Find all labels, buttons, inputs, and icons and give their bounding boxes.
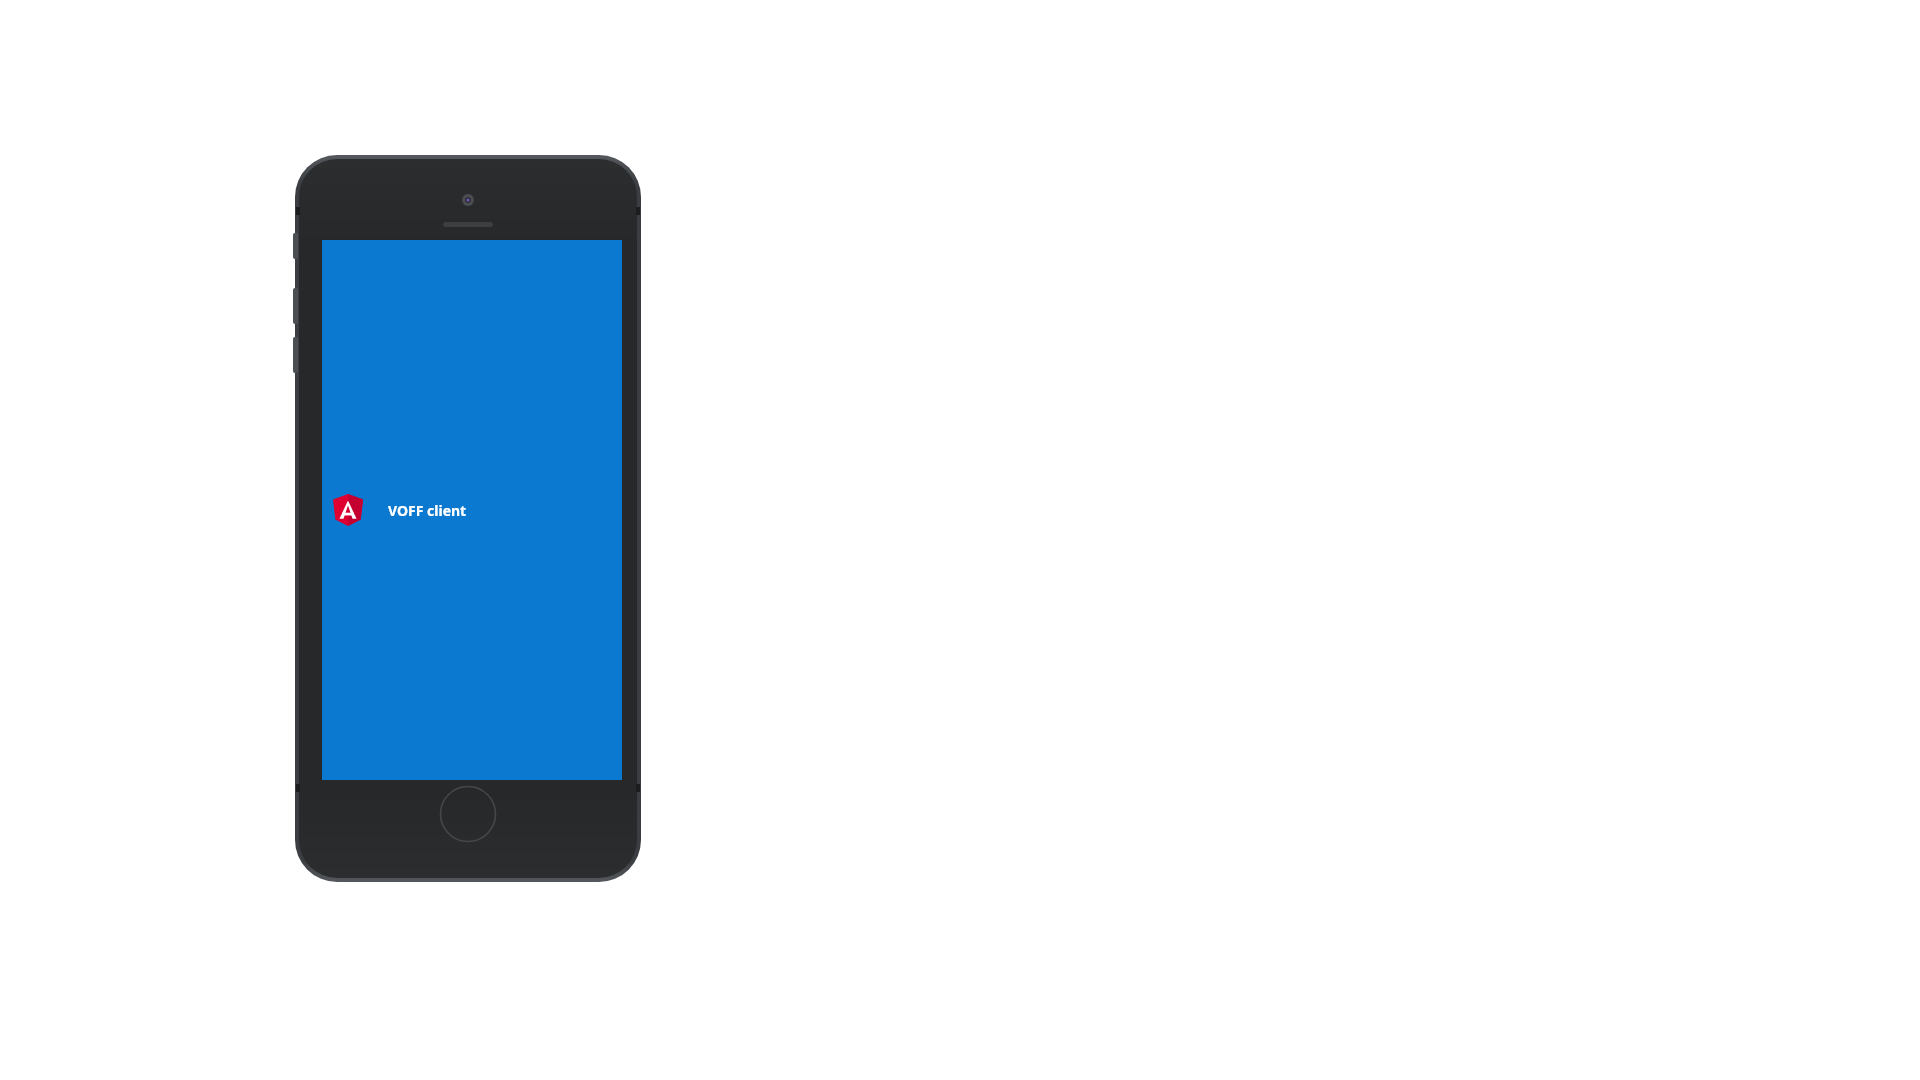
button[interactable]: Angular logo [322, 240, 622, 780]
other: Angular logo [333, 494, 363, 526]
staticText: VOFF client [388, 501, 467, 520]
